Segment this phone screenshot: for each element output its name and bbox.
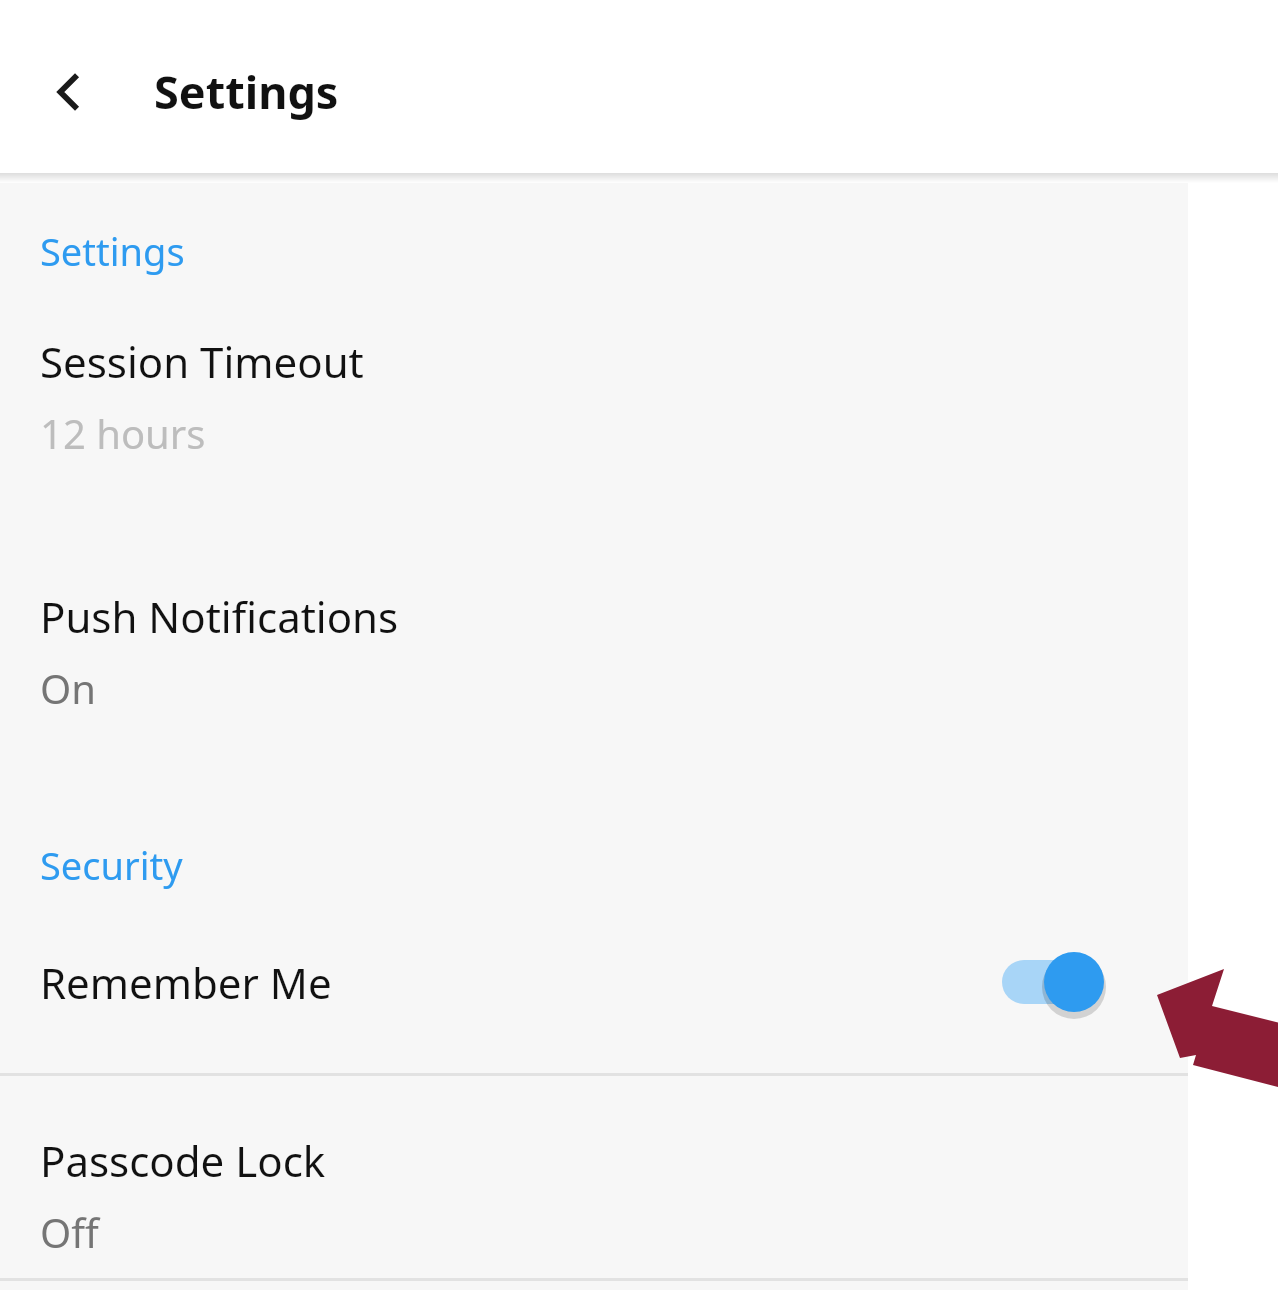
button[interactable]: Push Notifications xyxy=(0,584,1188,719)
staticText: 12 hours xyxy=(40,406,206,460)
button[interactable]: Passcode Lock xyxy=(0,1128,1188,1263)
staticText: On xyxy=(40,661,96,715)
staticText: Security xyxy=(40,839,183,891)
staticText: Off xyxy=(40,1205,99,1259)
staticText: Remember Me xyxy=(40,954,332,1011)
button[interactable]: Remember Me toggle, on xyxy=(1002,950,1120,1014)
staticText: Settings xyxy=(154,61,339,122)
button[interactable]: Remember Me xyxy=(0,891,1188,1073)
staticText: Session Timeout xyxy=(40,333,364,390)
staticText: Passcode Lock xyxy=(40,1132,326,1189)
staticText: Push Notifications xyxy=(40,588,399,645)
button[interactable]: Session Timeout xyxy=(0,329,1188,464)
button[interactable]: Back xyxy=(34,56,106,128)
staticText: Settings xyxy=(40,225,185,277)
